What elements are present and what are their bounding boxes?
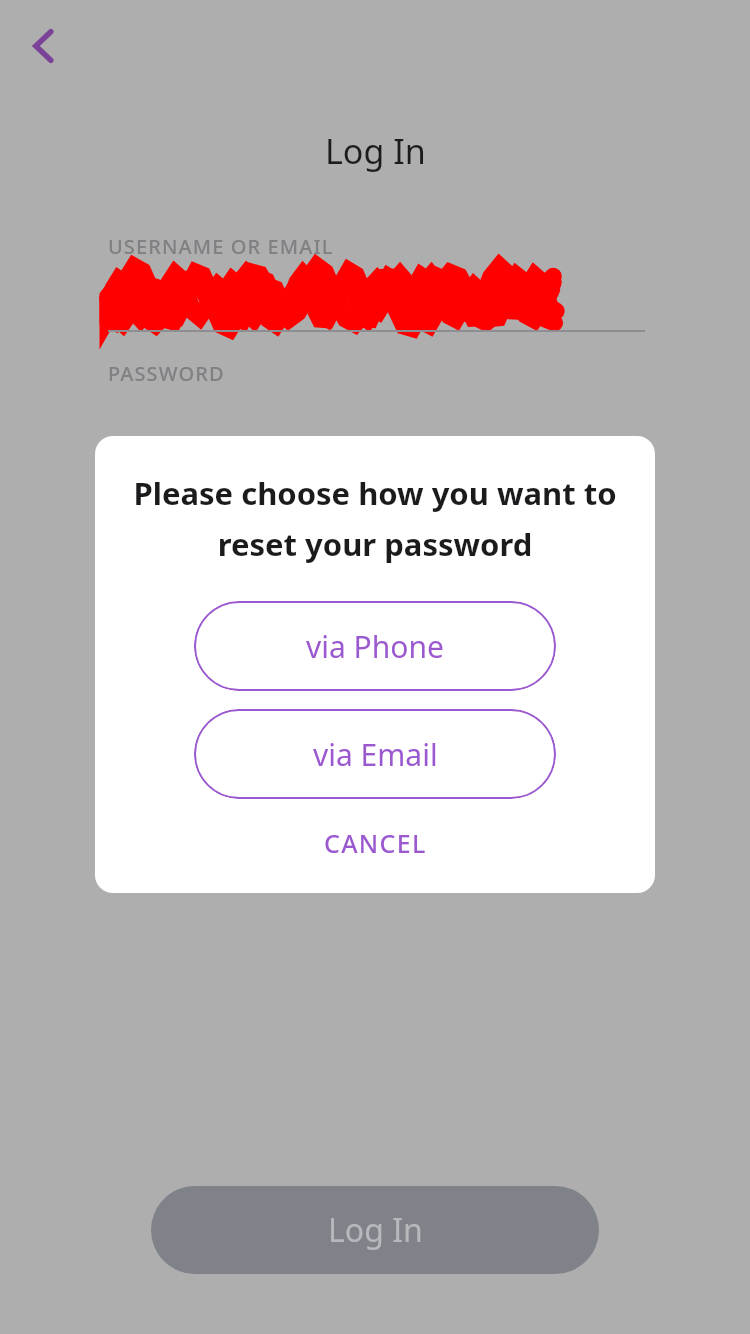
button[interactable]: via Email bbox=[194, 709, 556, 799]
button[interactable]: Log In bbox=[151, 1186, 599, 1274]
staticText: USERNAME OR EMAIL bbox=[108, 233, 334, 260]
staticText: Log In bbox=[328, 1208, 423, 1252]
staticText: Please choose how you want to reset your… bbox=[117, 472, 633, 565]
staticText: PASSWORD bbox=[108, 360, 225, 387]
button[interactable]: CANCEL bbox=[245, 815, 505, 871]
button[interactable]: via Phone bbox=[194, 601, 556, 691]
staticText: Log In bbox=[325, 128, 426, 174]
button[interactable]: Back bbox=[14, 16, 74, 76]
staticText: CANCEL bbox=[324, 826, 427, 860]
staticText: via Phone bbox=[306, 626, 444, 667]
staticText: via Email bbox=[313, 734, 438, 775]
